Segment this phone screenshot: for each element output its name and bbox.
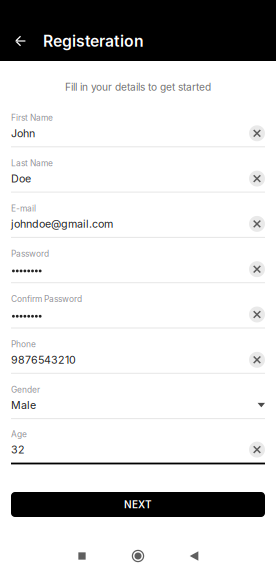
staticText: Confirm Password <box>11 294 82 304</box>
staticText: 32 <box>11 443 25 456</box>
staticText: 9876543210 <box>11 353 76 366</box>
button[interactable]: NEXT <box>11 492 265 517</box>
button[interactable]: Gender <box>11 374 265 419</box>
staticText: NEXT <box>124 498 152 511</box>
staticText: Gender <box>11 384 40 395</box>
staticText: Age <box>11 429 27 439</box>
staticText: Registeration <box>43 31 144 50</box>
staticText: E-mail <box>11 203 36 213</box>
staticText: Doe <box>11 172 31 185</box>
staticText: Password <box>11 249 49 259</box>
staticText: John <box>11 127 35 140</box>
button[interactable]: Back <box>6 21 35 61</box>
button[interactable]: Home <box>110 539 166 573</box>
button[interactable]: Age <box>11 419 265 464</box>
button[interactable]: Recent apps <box>54 539 110 573</box>
button[interactable]: Password <box>11 238 265 283</box>
button[interactable]: First Name <box>11 102 265 147</box>
button[interactable]: Confirm Password <box>11 283 265 328</box>
staticText: Phone <box>11 339 36 349</box>
staticText: First Name <box>11 113 53 123</box>
button[interactable]: Phone <box>11 328 265 374</box>
staticText: Male <box>11 399 36 411</box>
button[interactable]: Last Name <box>11 147 265 193</box>
staticText: Fill in your details to get started <box>65 81 211 93</box>
button[interactable]: E-mail <box>11 193 265 238</box>
staticText: johndoe@gmail.com <box>11 217 113 230</box>
button[interactable]: Back <box>166 539 222 573</box>
staticText: Last Name <box>11 158 53 168</box>
